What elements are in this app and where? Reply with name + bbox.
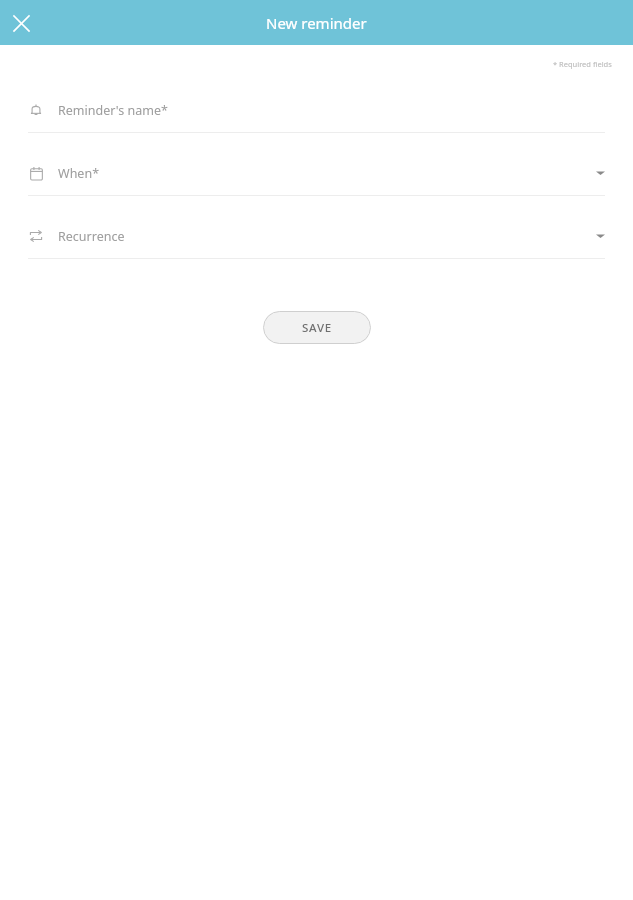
staticText: * Required fields — [553, 59, 612, 69]
button[interactable]: Reminder's name* — [0, 88, 633, 151]
button[interactable]: Close — [3, 5, 39, 41]
staticText: New reminder — [266, 13, 367, 33]
staticText: When* — [58, 165, 100, 182]
button[interactable]: Recurrence — [0, 214, 633, 277]
staticText: Recurrence — [58, 228, 125, 245]
button[interactable]: SAVE — [263, 311, 371, 344]
button[interactable]: When* — [0, 151, 633, 214]
staticText: SAVE — [302, 320, 333, 336]
staticText: Reminder's name* — [58, 102, 168, 119]
